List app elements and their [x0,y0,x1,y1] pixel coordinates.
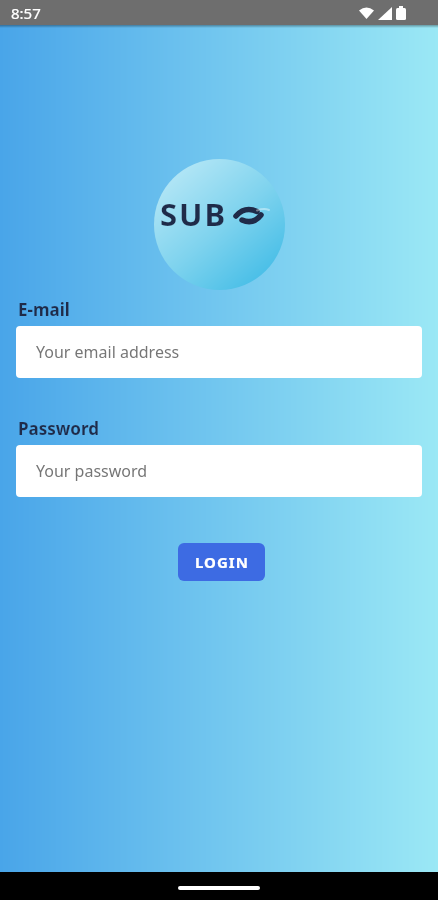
staticText: 8:57 [11,3,41,23]
staticText: SUB [160,193,228,235]
button[interactable]: Your password [16,445,422,497]
button[interactable]: LOGIN [178,543,265,581]
staticText: E-mail [18,298,70,321]
staticText: Your password [36,460,148,482]
button[interactable]: Your email address [16,326,422,378]
staticText: LOGIN [195,552,249,572]
staticText: Password [18,417,99,440]
staticText: Your email address [36,341,180,363]
